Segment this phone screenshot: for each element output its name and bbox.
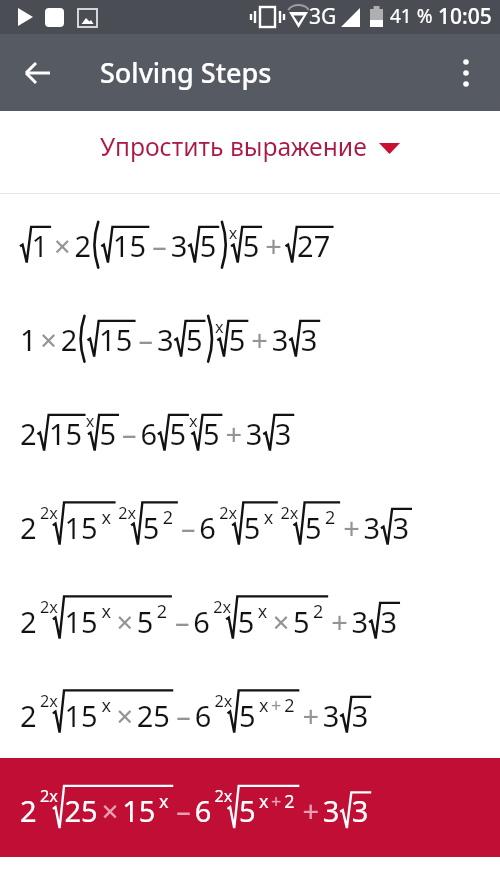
button[interactable]: Back (14, 49, 62, 97)
button[interactable] (0, 382, 500, 476)
staticText: Упростить выражение (100, 130, 367, 164)
button[interactable] (0, 664, 500, 758)
staticText: Solving Steps (100, 54, 272, 91)
button[interactable]: More options (442, 49, 490, 97)
button[interactable] (0, 758, 500, 857)
button[interactable] (0, 194, 500, 288)
button[interactable] (0, 288, 500, 382)
button[interactable]: Упростить выражение (0, 111, 500, 193)
button[interactable] (0, 570, 500, 664)
button[interactable] (0, 476, 500, 570)
